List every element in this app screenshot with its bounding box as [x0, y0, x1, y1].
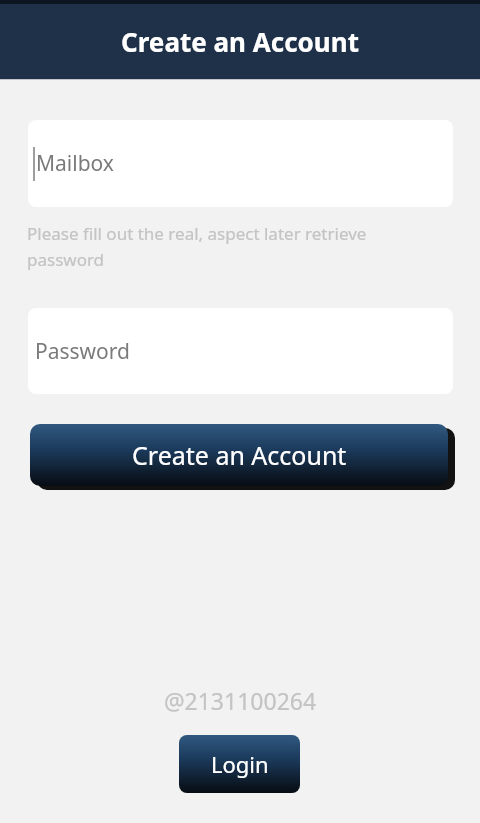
- staticText: Password: [35, 337, 130, 366]
- staticText: Create an Account: [121, 24, 359, 59]
- staticText: Please fill out the real, aspect later r…: [27, 222, 447, 271]
- staticText: Login: [211, 749, 269, 779]
- button[interactable]: Mailbox: [28, 120, 453, 207]
- button[interactable]: Password: [28, 308, 453, 394]
- button[interactable]: Login: [179, 735, 300, 793]
- staticText: Create an Account: [132, 438, 347, 472]
- staticText: @2131100264: [0, 685, 480, 716]
- staticText: Mailbox: [36, 149, 114, 178]
- button[interactable]: Create an Account: [30, 424, 448, 486]
